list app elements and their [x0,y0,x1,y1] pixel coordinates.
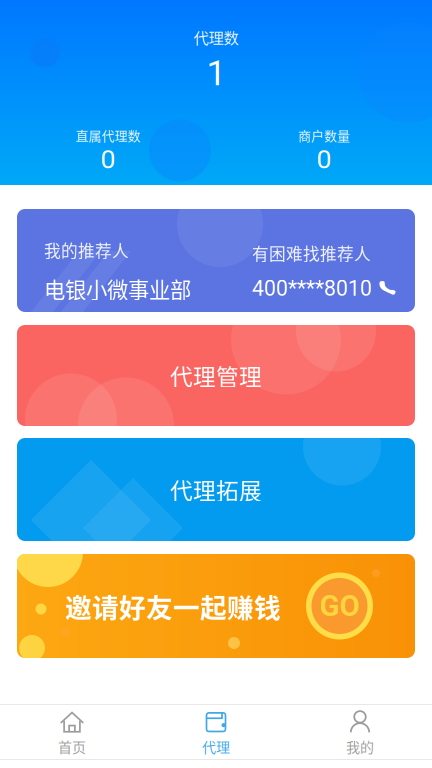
button[interactable]: 我的推荐人 [17,209,415,312]
staticText: 电银小微事业部 [44,273,191,304]
staticText: 直属代理数 [75,126,140,144]
staticText: 商户数量 [298,126,350,144]
staticText: 邀请好友一起赚钱 [65,587,281,625]
staticText: 400****8010 [252,276,372,301]
staticText: 0 [100,144,115,175]
staticText: 代理管理 [170,359,262,392]
staticText: 0 [316,144,331,175]
button[interactable]: 我的 [288,702,432,762]
staticText: 代理数 [193,26,238,48]
staticText: 代理拓展 [170,473,262,506]
staticText: 我的推荐人 [44,238,129,262]
staticText: GO [319,589,359,623]
staticText: 首页 [58,736,86,757]
button[interactable]: 代理 [144,702,288,762]
button[interactable]: 代理管理 [17,325,415,426]
staticText: 代理 [202,736,230,757]
staticText: 我的 [346,736,374,757]
staticText: 1 [206,53,225,94]
staticText: 有困难找推荐人 [252,241,371,265]
button[interactable]: 首页 [0,702,144,762]
button[interactable]: 邀请好友一起赚钱 [17,554,415,658]
button[interactable]: 代理拓展 [17,438,415,541]
